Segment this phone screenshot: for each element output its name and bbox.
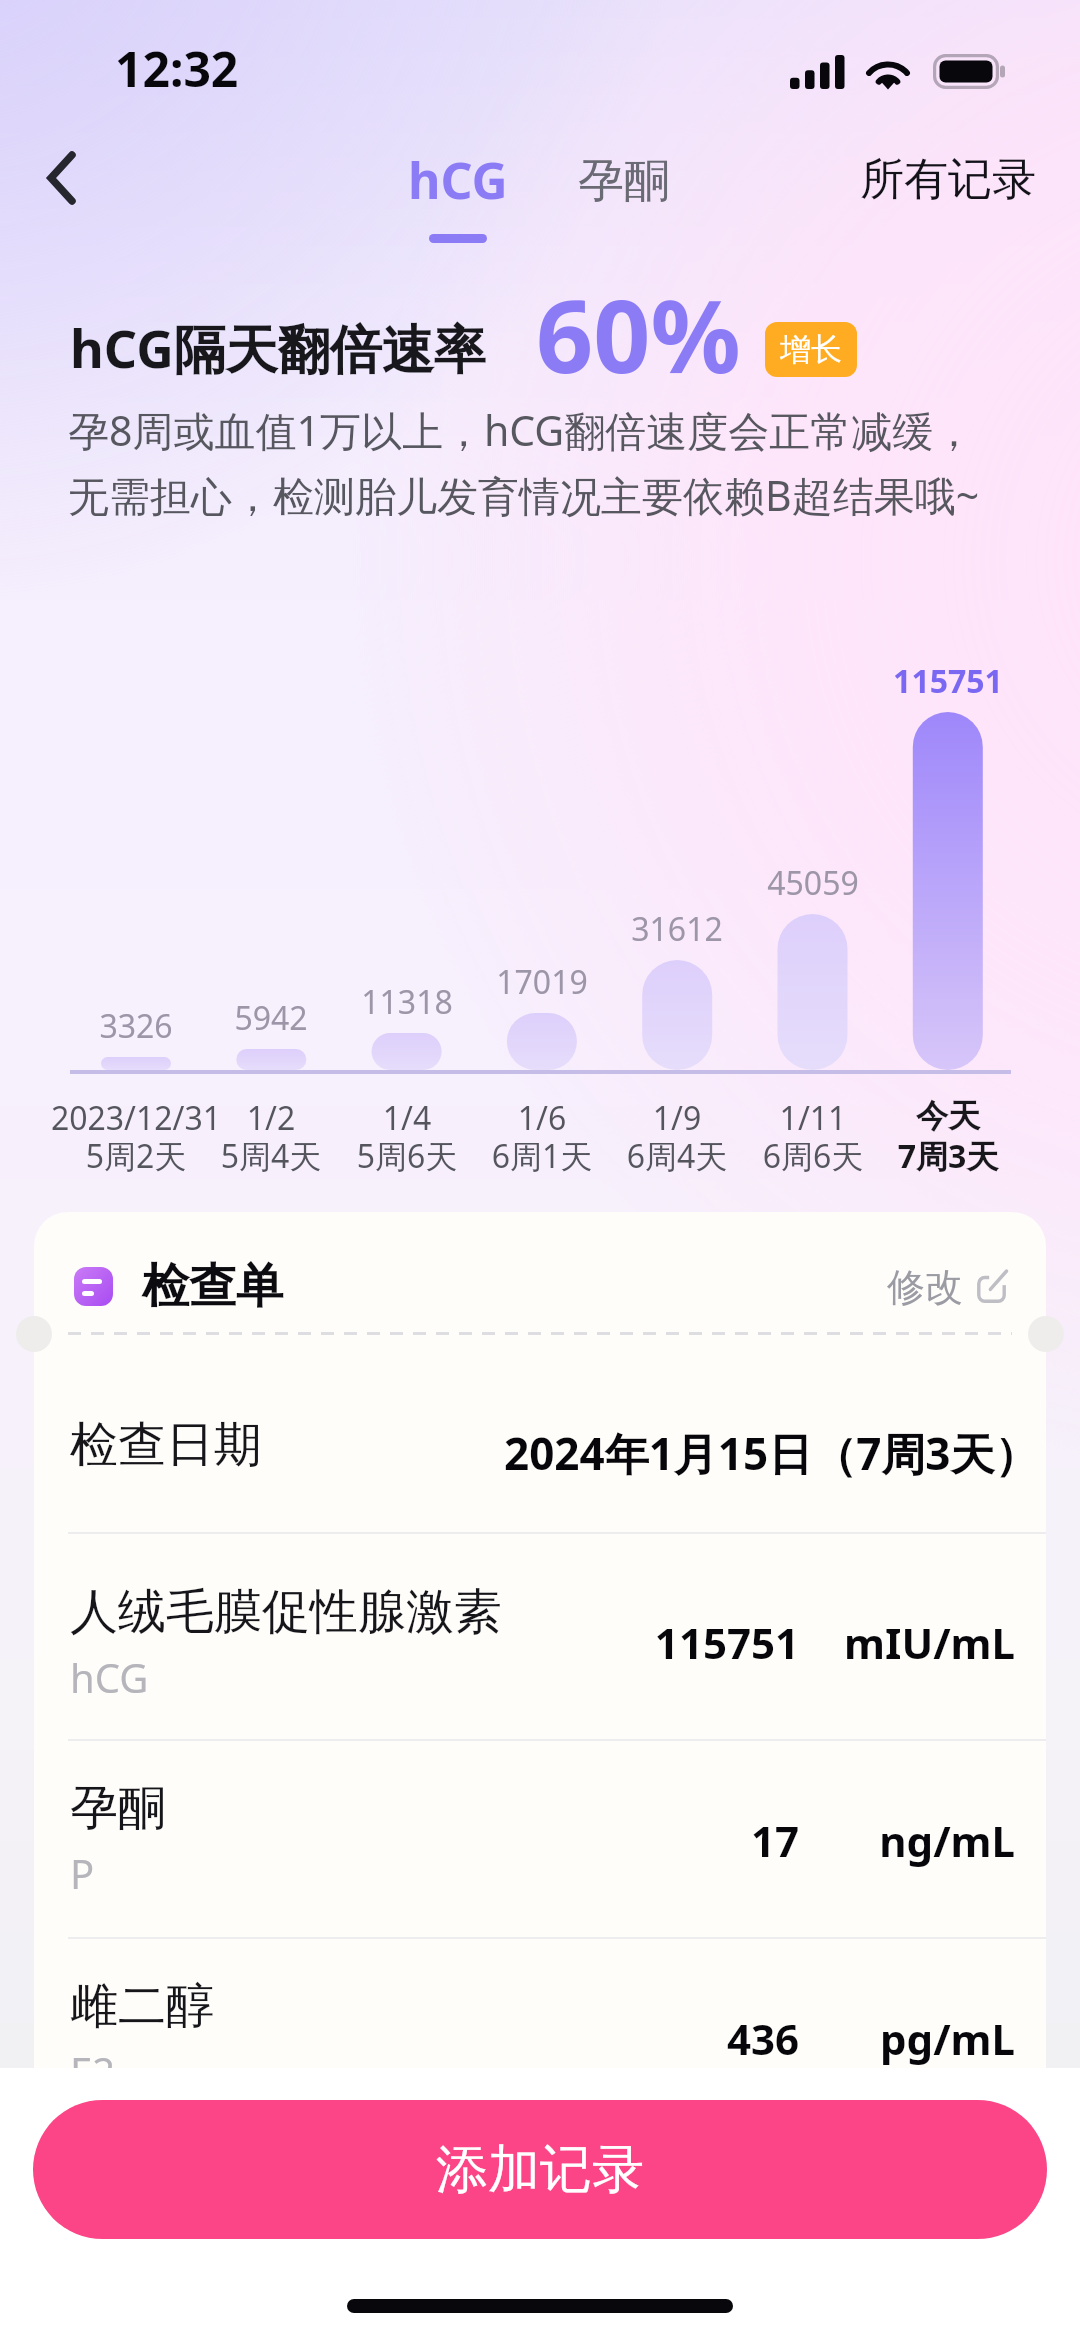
staticText: 115751 (893, 659, 1003, 703)
staticText: 2024年1月15日（7周3天） (504, 1423, 1039, 1483)
staticText: 3326 (99, 1004, 173, 1048)
button[interactable]: 所有记录 (860, 152, 1036, 207)
staticText: hCG (408, 146, 508, 214)
staticText: 5周2天 (41, 1134, 231, 1178)
staticText: ng/mL (815, 1812, 1015, 1869)
button[interactable]: hCG (408, 146, 508, 243)
staticText: 6周6天 (718, 1134, 908, 1178)
button[interactable]: Back (1, 118, 121, 238)
staticText: pg/mL (815, 2010, 1015, 2067)
staticText: 检查日期 (70, 1415, 262, 1475)
staticText: 检查单 (142, 1257, 283, 1316)
staticText: E2 (70, 2044, 116, 2068)
staticText: 17 (499, 1812, 799, 1869)
staticText: mIU/mL (815, 1614, 1015, 1671)
staticText: 5周4天 (176, 1134, 366, 1178)
button[interactable]: 添加记录 (33, 2100, 1047, 2239)
staticText: 孕酮 (578, 152, 670, 210)
staticText: 2023/12/31 (41, 1096, 231, 1140)
staticText: 11318 (361, 980, 453, 1024)
staticText: 7周3天 (853, 1134, 1043, 1178)
staticText: hCG (70, 1650, 149, 1704)
staticText: 雌二醇 (70, 1976, 214, 2036)
button[interactable] (34, 1939, 1046, 2068)
staticText: P (70, 1846, 95, 1900)
staticText: 增长 (780, 330, 842, 369)
button[interactable] (34, 1741, 1046, 1937)
staticText: 436 (499, 2010, 799, 2067)
staticText: 1/4 (312, 1096, 502, 1140)
button[interactable] (34, 1534, 1046, 1739)
staticText: 孕8周或血值1万以上，hCG翻倍速度会正常减缓， 无需担心，检测胎儿发育情况主要… (68, 402, 980, 523)
staticText: 115751 (499, 1614, 799, 1671)
button[interactable]: 修改 (887, 1263, 1006, 1311)
staticText: 60% (536, 266, 741, 402)
staticText: 6周4天 (582, 1134, 772, 1178)
staticText: 31612 (631, 907, 723, 951)
button[interactable]: 孕酮 (578, 152, 670, 210)
staticText: 12:32 (115, 36, 239, 101)
staticText: 5942 (234, 996, 308, 1040)
staticText: hCG隔天翻倍速率 (70, 312, 486, 383)
staticText: 5周6天 (312, 1134, 502, 1178)
staticText: 添加记录 (436, 2137, 644, 2203)
staticText: 45059 (767, 861, 859, 905)
staticText: 1/9 (582, 1096, 772, 1140)
staticText: 1/2 (176, 1096, 366, 1140)
staticText: 所有记录 (860, 152, 1036, 207)
staticText: 人绒毛膜促性腺激素 (70, 1582, 502, 1642)
staticText: 17019 (496, 960, 588, 1004)
staticText: 1/11 (718, 1096, 908, 1140)
staticText: 1/6 (447, 1096, 637, 1140)
staticText: 6周1天 (447, 1134, 637, 1178)
staticText: 孕酮 (70, 1778, 166, 1838)
staticText: 修改 (887, 1263, 963, 1311)
button[interactable] (34, 1335, 1046, 1532)
staticText: 今天 (853, 1096, 1043, 1136)
